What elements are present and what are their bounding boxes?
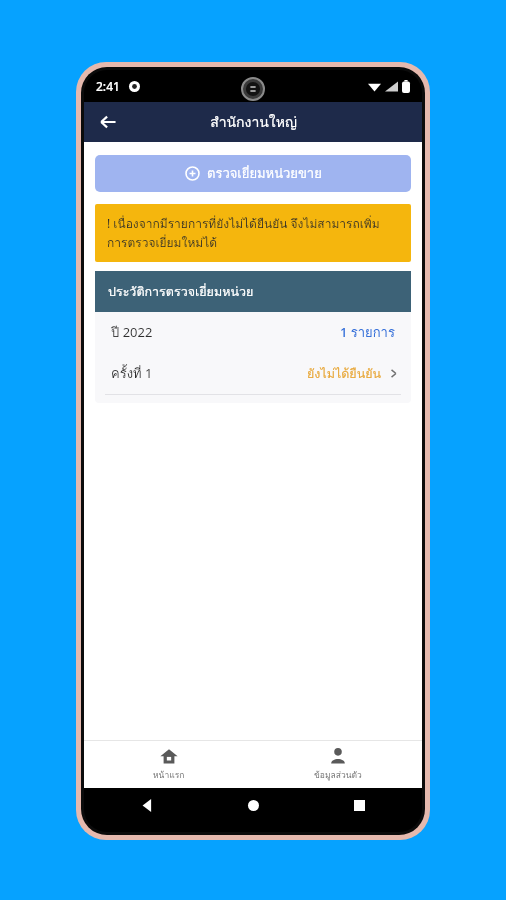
staticText: ประวัติการตรวจเยี่ยมหน่วย bbox=[108, 282, 254, 302]
staticText: ข้อมูลส่วนตัว bbox=[314, 768, 362, 782]
staticText: ตรวจเยี่ยมหน่วยขาย bbox=[207, 163, 322, 184]
staticText: ครั้งที่ 1 bbox=[111, 363, 153, 384]
button[interactable]: ครั้งที่ 1 bbox=[95, 353, 411, 394]
staticText: สำนักงานใหญ่ bbox=[210, 111, 297, 133]
staticText: 1 รายการ bbox=[340, 322, 395, 343]
button[interactable]: หน้าแรก bbox=[84, 741, 253, 788]
button[interactable]: Home bbox=[236, 788, 270, 822]
button[interactable]: Recents bbox=[342, 788, 376, 822]
staticText: 2:41 bbox=[96, 78, 120, 94]
button[interactable]: ข้อมูลส่วนตัว bbox=[253, 741, 422, 788]
staticText: หน้าแรก bbox=[153, 768, 185, 782]
button[interactable]: Back bbox=[90, 104, 126, 140]
staticText: ! เนื่องจากมีรายการที่ยังไม่ได้ยืนยัน จึ… bbox=[107, 214, 399, 252]
button[interactable]: ปี 2022 bbox=[95, 312, 411, 353]
button[interactable]: Back bbox=[130, 788, 164, 822]
button[interactable]: ตรวจเยี่ยมหน่วยขาย bbox=[95, 155, 411, 192]
staticText: ยังไม่ได้ยืนยัน bbox=[307, 364, 382, 384]
staticText: ปี 2022 bbox=[111, 322, 153, 343]
